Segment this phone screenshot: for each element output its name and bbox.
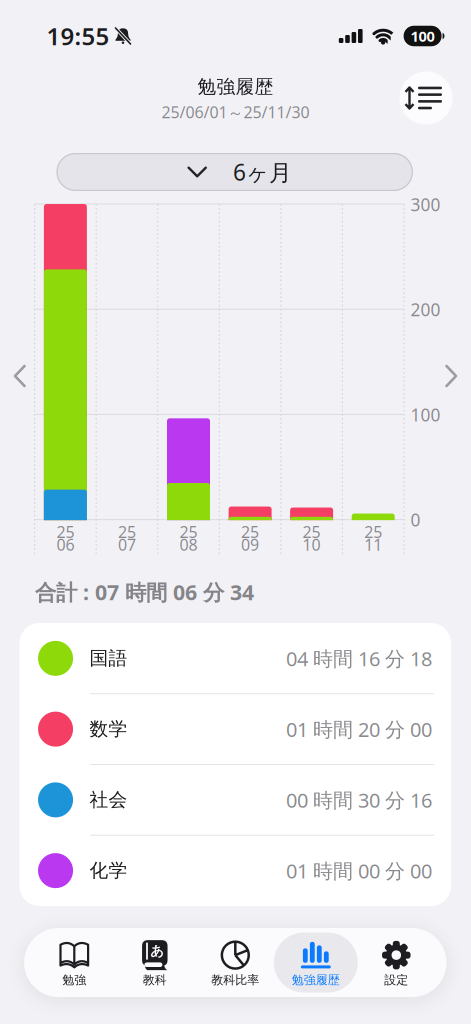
staticText: 06	[56, 534, 74, 555]
button[interactable]: 教科比率	[195, 928, 276, 997]
staticText: 国語	[90, 647, 128, 670]
button[interactable]: 勉強履歴	[276, 928, 356, 997]
staticText: 0	[410, 508, 420, 531]
staticText: 社会	[90, 788, 128, 811]
staticText: 教科	[143, 973, 167, 987]
staticText: 設定	[384, 973, 408, 987]
staticText: 数学	[90, 718, 128, 741]
staticText: 100	[410, 403, 440, 426]
staticText: 25	[56, 521, 74, 542]
staticText: 200	[410, 298, 440, 321]
button[interactable]: あ	[115, 928, 195, 997]
staticText: 09	[241, 534, 259, 555]
button[interactable]: 社会	[20, 764, 451, 835]
staticText: 合計 : 07 時間 06 分 34	[35, 578, 254, 606]
button[interactable]: 国語	[20, 623, 451, 694]
button[interactable]: 化学	[20, 835, 451, 906]
staticText: 100	[411, 26, 435, 46]
button[interactable]	[399, 71, 452, 124]
staticText: 25	[241, 521, 259, 542]
staticText: 勉強履歴	[292, 973, 340, 987]
staticText: 01 時間 20 分 00	[286, 716, 432, 742]
button[interactable]: 6ヶ月	[56, 153, 413, 191]
staticText: 6ヶ月	[233, 157, 292, 187]
staticText: 化学	[90, 859, 128, 882]
staticText: 19:55	[46, 20, 109, 52]
staticText: 25	[179, 521, 197, 542]
button[interactable]	[13, 364, 26, 387]
staticText: 勉強履歴	[197, 75, 273, 98]
staticText: 00 時間 30 分 16	[286, 787, 432, 813]
button[interactable]: 設定	[356, 928, 437, 997]
staticText: 08	[179, 534, 197, 555]
staticText: 04 時間 16 分 18	[286, 645, 432, 672]
staticText: 勉強	[62, 973, 86, 987]
staticText: 25	[303, 521, 321, 542]
staticText: 07	[118, 534, 136, 555]
staticText: 300	[410, 193, 440, 216]
staticText: 10	[303, 534, 321, 555]
staticText: 01 時間 00 分 00	[286, 857, 432, 884]
staticText: 11	[364, 534, 382, 555]
button[interactable]	[444, 364, 457, 387]
button[interactable]: 勉強	[34, 928, 115, 997]
staticText: 教科比率	[211, 973, 259, 987]
staticText: 25	[118, 521, 136, 542]
button[interactable]: 数学	[20, 694, 451, 765]
staticText: あ	[150, 943, 164, 959]
staticText: 25	[364, 521, 382, 542]
staticText: 25/06/01～25/11/30	[161, 101, 309, 123]
